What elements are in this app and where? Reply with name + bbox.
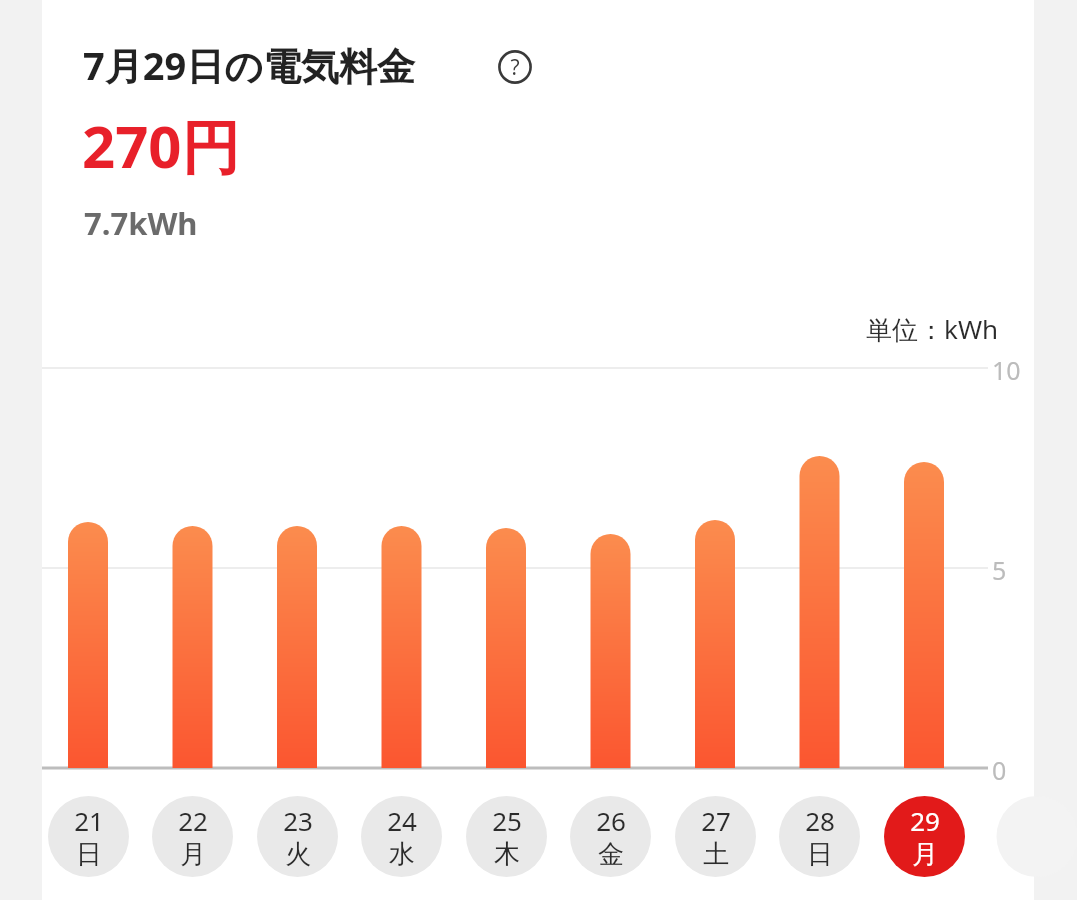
staticText: 日 [76,838,102,871]
staticText: 24 [387,803,417,838]
staticText: 5 [992,553,1007,583]
staticText: 26 [596,803,626,838]
staticText: 単位：kWh [866,311,999,347]
staticText: 月 [180,838,206,871]
button[interactable]: 27 [675,796,756,877]
staticText: 28 [805,803,835,838]
staticText: 29 [910,803,940,838]
staticText: 25 [492,803,522,838]
staticText: 水 [389,838,415,871]
staticText: 月 [912,838,938,871]
staticText: 10 [992,353,1021,383]
button[interactable]: 21 [48,796,129,877]
button[interactable]: 25 [466,796,547,877]
staticText: 23 [283,803,313,838]
staticText: 火 [285,838,311,871]
staticText: 土 [703,838,729,871]
staticText: ? [510,53,520,82]
staticText: 22 [178,803,208,838]
staticText: 日 [807,838,833,871]
staticText: 27 [701,803,731,838]
button[interactable]: 23 [257,796,338,877]
staticText: 270円 [82,106,240,185]
button[interactable]: 22 [152,796,233,877]
staticText: 木 [494,838,520,871]
staticText: 7.7kWh [84,202,198,244]
staticText: 7月29日の電気料金 [83,39,416,91]
button[interactable]: 28 [779,796,860,877]
button[interactable]: 26 [570,796,651,877]
staticText: 金 [598,838,624,871]
button[interactable]: 29 [884,796,965,877]
staticText: 21 [74,803,104,838]
button[interactable]: 24 [361,796,442,877]
staticText: 0 [992,753,1007,783]
button[interactable]: ヘルプ [492,44,538,90]
